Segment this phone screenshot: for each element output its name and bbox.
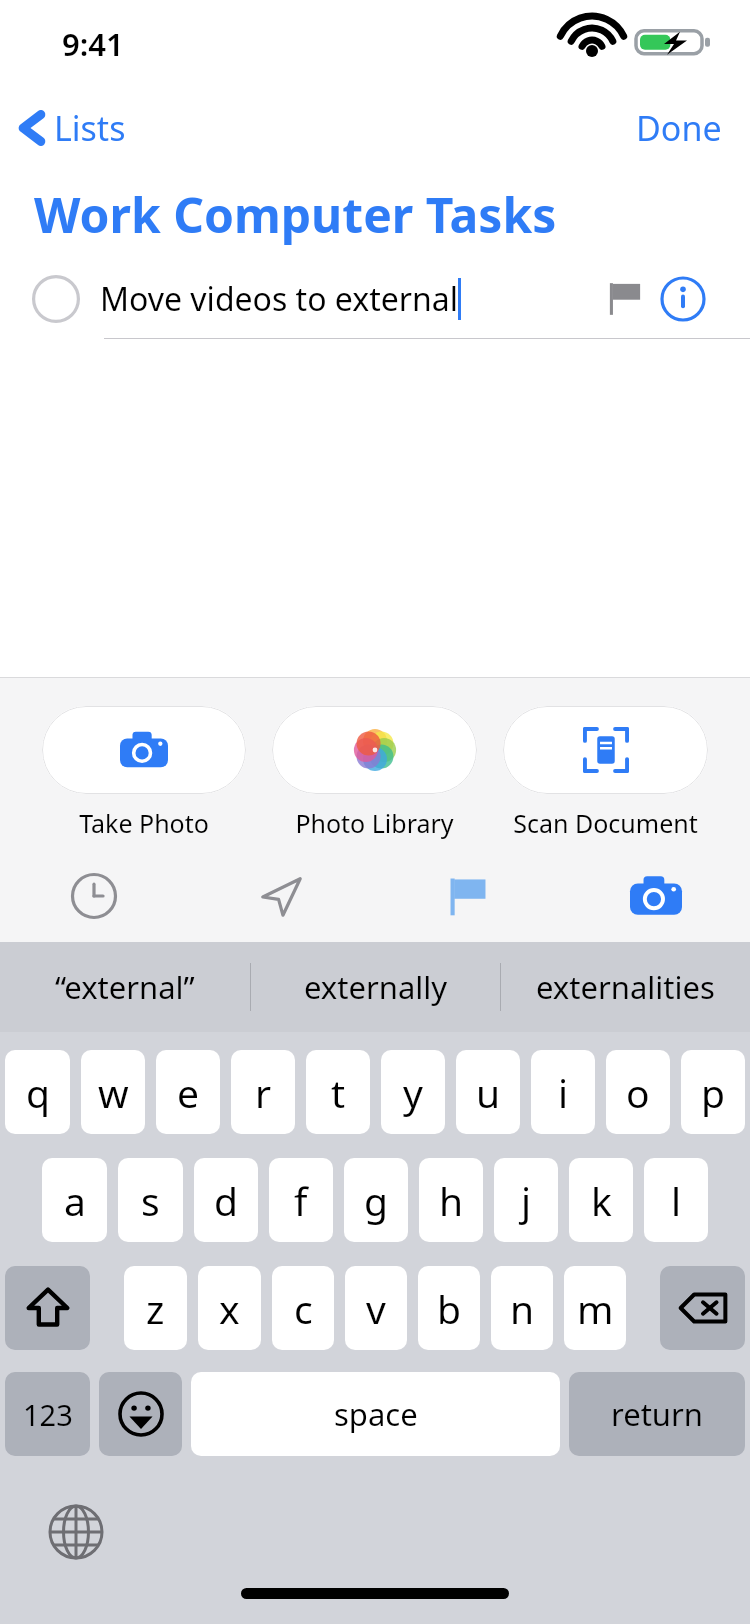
button[interactable]: e bbox=[156, 1050, 220, 1134]
staticText: n bbox=[510, 1282, 535, 1335]
staticText: d bbox=[214, 1174, 238, 1227]
staticText: i bbox=[558, 1066, 569, 1119]
button[interactable]: v bbox=[345, 1266, 407, 1350]
button[interactable]: externally bbox=[251, 942, 500, 1032]
staticText: y bbox=[403, 1066, 423, 1119]
button[interactable]: w bbox=[81, 1050, 145, 1134]
staticText: s bbox=[141, 1174, 160, 1227]
button[interactable]: Add photo bbox=[562, 856, 750, 936]
button[interactable]: l bbox=[644, 1158, 708, 1242]
button[interactable]: y bbox=[381, 1050, 445, 1134]
staticText: t bbox=[331, 1066, 346, 1119]
button[interactable]: Remind me bbox=[0, 856, 187, 936]
button[interactable]: o bbox=[606, 1050, 670, 1134]
staticText: Move videos to external bbox=[100, 277, 458, 321]
button[interactable]: i bbox=[531, 1050, 595, 1134]
staticText: Work Computer Tasks bbox=[34, 182, 557, 247]
staticText: u bbox=[476, 1066, 501, 1119]
staticText: r bbox=[255, 1066, 272, 1119]
button[interactable]: d bbox=[194, 1158, 258, 1242]
staticText: o bbox=[626, 1066, 650, 1119]
staticText: Photo Library bbox=[295, 806, 454, 840]
staticText: a bbox=[64, 1174, 86, 1227]
button[interactable]: Change keyboard bbox=[44, 1500, 108, 1564]
staticText: p bbox=[701, 1066, 725, 1119]
staticText: Scan Document bbox=[513, 806, 698, 840]
button[interactable]: Mark complete bbox=[32, 275, 80, 323]
staticText: k bbox=[591, 1174, 612, 1227]
staticText: 9:41 bbox=[62, 23, 124, 65]
button[interactable]: h bbox=[419, 1158, 483, 1242]
button[interactable]: Photo Library bbox=[272, 706, 477, 840]
staticText: x bbox=[219, 1282, 240, 1335]
button[interactable]: Shift bbox=[5, 1266, 90, 1350]
staticText: v bbox=[366, 1282, 386, 1335]
staticText: Done bbox=[636, 105, 722, 151]
button[interactable]: m bbox=[564, 1266, 626, 1350]
button[interactable]: Lists bbox=[12, 99, 134, 157]
staticText: externally bbox=[304, 966, 448, 1008]
button[interactable]: Scan Document bbox=[503, 706, 708, 840]
staticText: f bbox=[294, 1174, 308, 1227]
button[interactable]: q bbox=[5, 1050, 70, 1134]
staticText: externalities bbox=[536, 966, 715, 1008]
button[interactable]: k bbox=[569, 1158, 633, 1242]
button[interactable]: 123 bbox=[5, 1372, 90, 1456]
staticText: 123 bbox=[23, 1395, 73, 1434]
button[interactable]: Details bbox=[654, 270, 712, 328]
staticText: l bbox=[671, 1174, 682, 1227]
staticText: h bbox=[439, 1174, 464, 1227]
button[interactable]: externalities bbox=[501, 942, 750, 1032]
button[interactable]: p bbox=[681, 1050, 745, 1134]
button[interactable]: Backspace bbox=[660, 1266, 745, 1350]
button[interactable]: Done bbox=[626, 99, 732, 157]
staticText: g bbox=[364, 1174, 388, 1227]
button[interactable]: Flag bbox=[596, 270, 654, 328]
button[interactable]: a bbox=[42, 1158, 107, 1242]
button[interactable]: “external” bbox=[0, 942, 250, 1032]
button[interactable]: Location bbox=[187, 856, 374, 936]
staticText: j bbox=[521, 1174, 532, 1227]
button[interactable]: b bbox=[418, 1266, 480, 1350]
staticText: z bbox=[146, 1282, 165, 1335]
button[interactable]: space bbox=[191, 1372, 560, 1456]
button[interactable]: n bbox=[491, 1266, 553, 1350]
button[interactable]: Take Photo bbox=[42, 706, 246, 840]
staticText: space bbox=[334, 1393, 418, 1435]
staticText: w bbox=[98, 1066, 129, 1119]
button[interactable]: s bbox=[118, 1158, 183, 1242]
button[interactable]: return bbox=[569, 1372, 745, 1456]
button[interactable]: x bbox=[198, 1266, 261, 1350]
button[interactable]: t bbox=[306, 1050, 370, 1134]
button[interactable]: r bbox=[231, 1050, 295, 1134]
staticText: c bbox=[294, 1282, 313, 1335]
button[interactable]: Emoji bbox=[99, 1372, 182, 1456]
staticText: Lists bbox=[54, 105, 126, 151]
staticText: e bbox=[177, 1066, 199, 1119]
staticText: b bbox=[437, 1282, 461, 1335]
staticText: m bbox=[577, 1282, 614, 1335]
button[interactable]: Flag bbox=[374, 856, 562, 936]
button[interactable]: u bbox=[456, 1050, 520, 1134]
button[interactable]: c bbox=[272, 1266, 334, 1350]
button[interactable]: j bbox=[494, 1158, 558, 1242]
staticText: Take Photo bbox=[79, 806, 209, 840]
staticText: “external” bbox=[55, 966, 195, 1008]
staticText: return bbox=[611, 1393, 703, 1435]
button[interactable]: g bbox=[344, 1158, 408, 1242]
button[interactable]: z bbox=[124, 1266, 187, 1350]
button[interactable]: f bbox=[269, 1158, 333, 1242]
staticText: q bbox=[26, 1066, 50, 1119]
